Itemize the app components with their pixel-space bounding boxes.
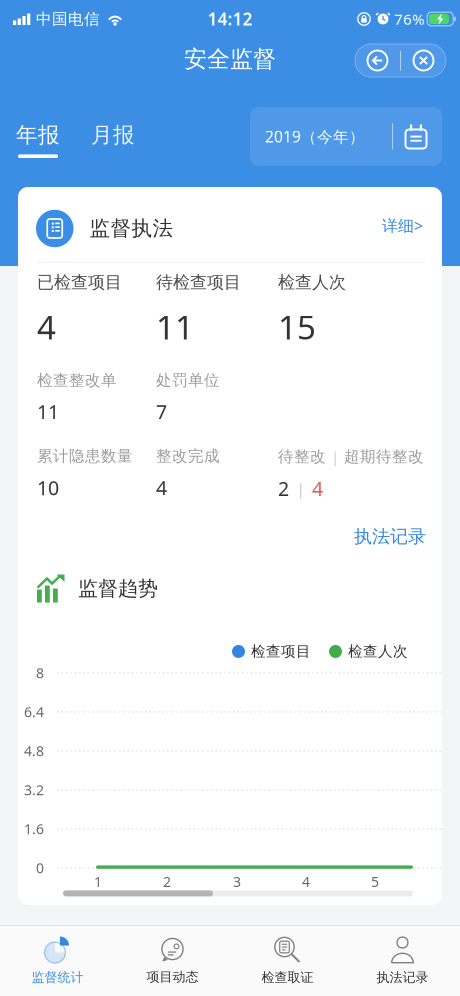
button[interactable]: 详细>: [382, 215, 423, 236]
staticText: 4.8: [24, 742, 44, 760]
staticText: |: [296, 477, 305, 500]
staticText: 4: [37, 305, 56, 349]
staticText: 监督执法: [89, 216, 173, 241]
staticText: 监督统计: [31, 969, 83, 985]
staticText: 5: [371, 872, 379, 891]
staticText: 4: [312, 476, 323, 501]
staticText: 2019（今年）: [265, 126, 365, 147]
staticText: 4: [302, 872, 310, 891]
staticText: 10: [37, 475, 59, 501]
staticText: 1.6: [24, 820, 44, 838]
staticText: 超期待整改: [344, 447, 424, 466]
staticText: 监督趋势: [78, 576, 158, 601]
button[interactable]: 月报: [60, 88, 135, 148]
staticText: 1: [94, 872, 102, 891]
staticText: 处罚单位: [156, 371, 220, 390]
button[interactable]: 选择年份: [250, 88, 460, 166]
staticText: 检查人次: [348, 643, 408, 660]
staticText: 整改完成: [156, 447, 220, 466]
staticText: 11: [37, 399, 59, 425]
button[interactable]: 检查取证: [230, 926, 345, 996]
staticText: 待检查项目: [156, 272, 241, 293]
staticText: 年报: [16, 122, 60, 148]
staticText: 月报: [91, 122, 135, 148]
staticText: 详细>: [382, 215, 423, 236]
button[interactable]: 执法记录: [345, 926, 460, 996]
staticText: 8: [36, 664, 44, 682]
staticText: 7: [156, 399, 167, 425]
staticText: 6.4: [24, 703, 44, 721]
staticText: 中国电信: [36, 9, 100, 28]
staticText: 2: [163, 872, 171, 891]
staticText: 项目动态: [146, 969, 198, 985]
staticText: 检查人次: [278, 272, 346, 293]
staticText: 检查取证: [261, 969, 313, 985]
button[interactable]: 监督统计: [0, 926, 115, 996]
staticText: 检查项目: [251, 643, 311, 660]
staticText: 执法记录: [354, 525, 426, 548]
staticText: 待整改: [278, 447, 326, 466]
button[interactable]: Close: [401, 44, 446, 77]
staticText: 0: [36, 859, 44, 877]
staticText: 已检查项目: [37, 272, 122, 293]
staticText: 3.2: [24, 781, 44, 799]
staticText: 检查整改单: [37, 371, 117, 390]
staticText: 安全监督: [184, 45, 276, 73]
staticText: 15: [278, 305, 316, 349]
button[interactable]: 年报: [0, 88, 60, 158]
staticText: |: [331, 447, 339, 466]
staticText: 累计隐患数量: [37, 447, 133, 466]
staticText: 执法记录: [376, 969, 428, 985]
staticText: 2: [278, 476, 289, 501]
staticText: 3: [233, 872, 241, 891]
button[interactable]: 项目动态: [115, 926, 230, 996]
staticText: 14:12: [207, 8, 252, 30]
staticText: 11: [156, 305, 194, 349]
button[interactable]: 执法记录: [354, 525, 426, 548]
staticText: 76%: [394, 9, 424, 29]
button[interactable]: Back: [355, 44, 400, 77]
staticText: 4: [156, 475, 167, 501]
